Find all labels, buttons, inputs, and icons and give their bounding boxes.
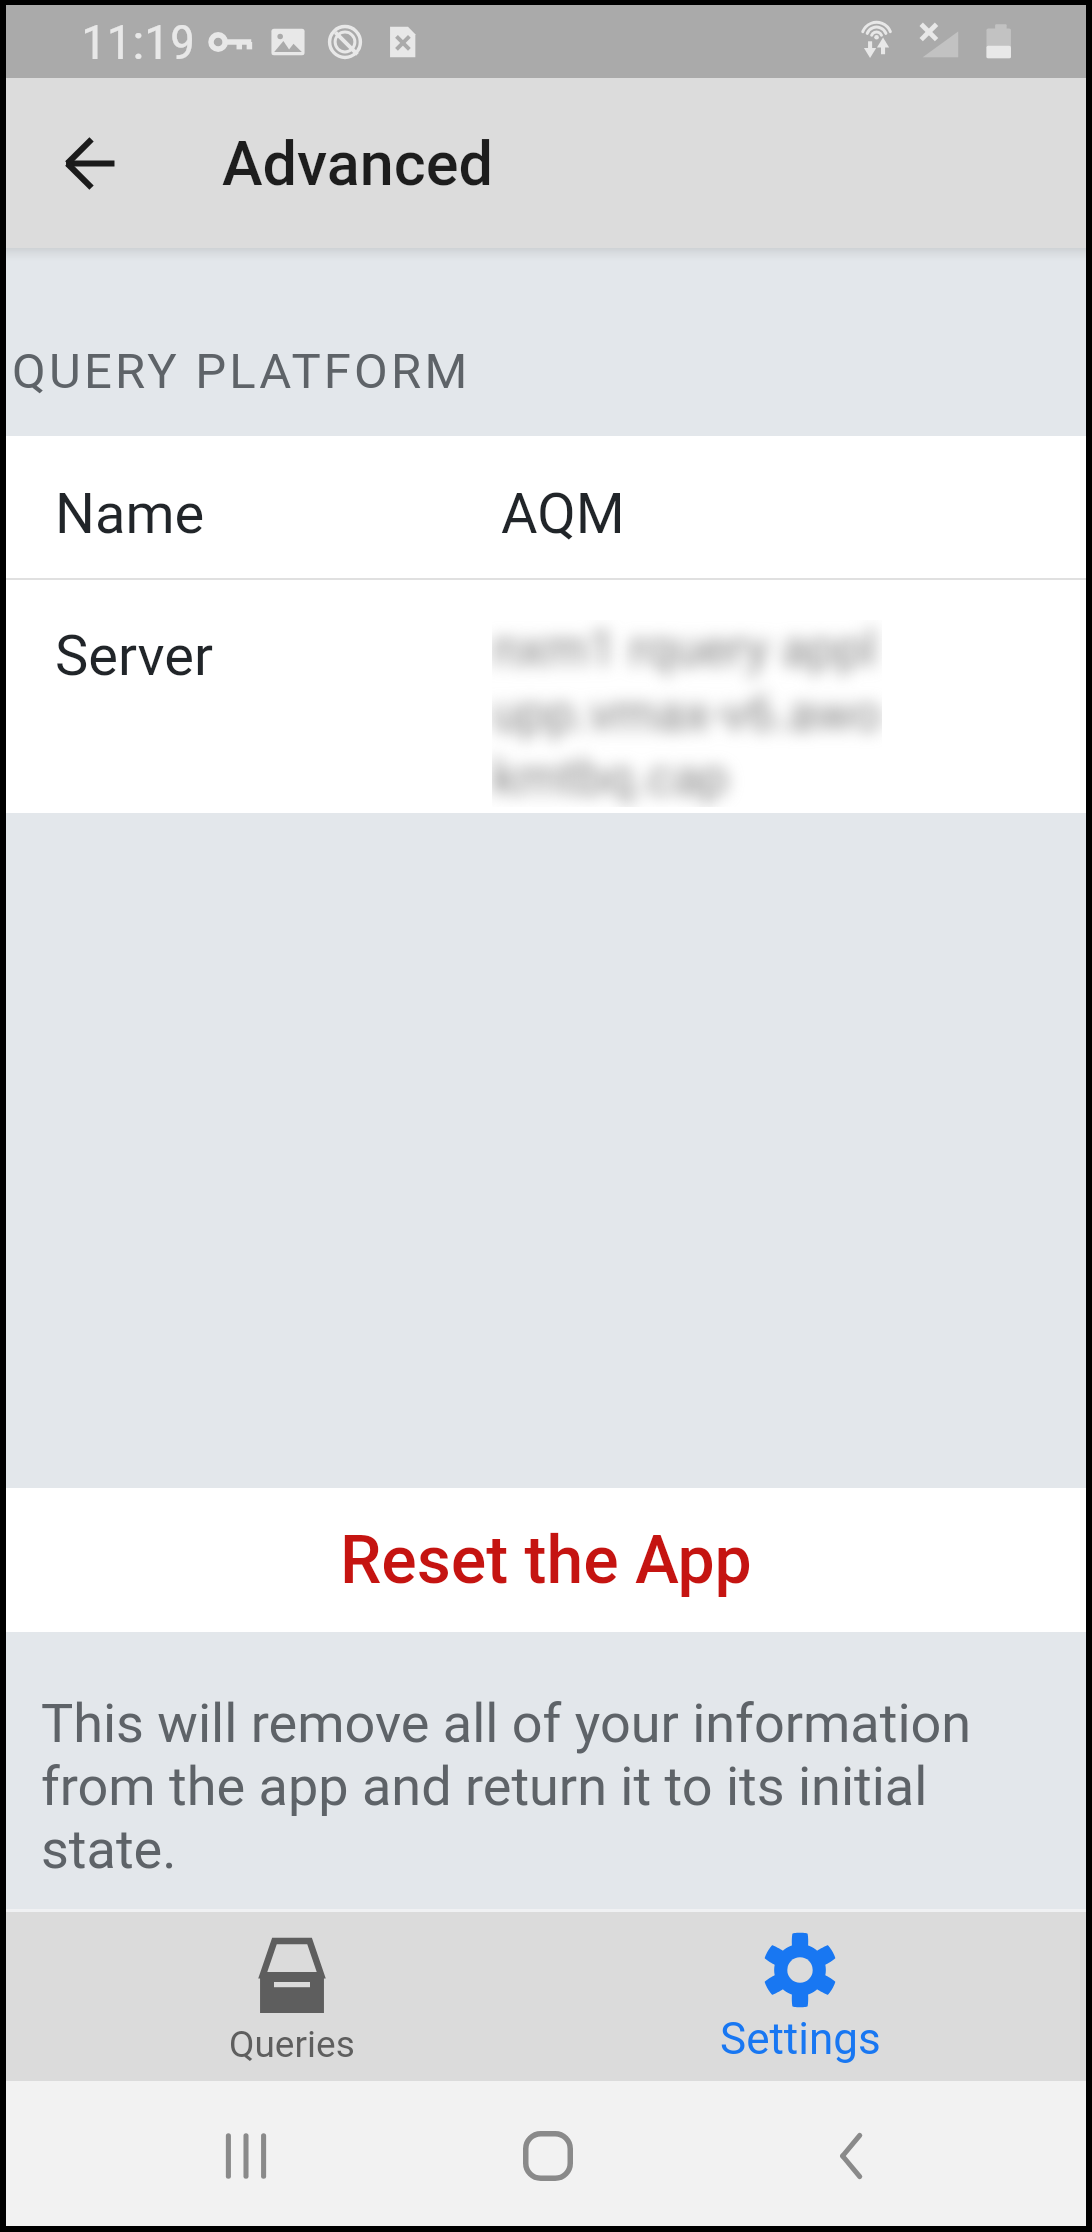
staticText: Server	[55, 623, 213, 689]
button[interactable]: Server	[6, 580, 1086, 813]
staticText: AQM	[501, 481, 625, 547]
staticText: Queries	[229, 2023, 355, 2066]
button[interactable]: Home	[453, 2085, 643, 2226]
button[interactable]: Recent apps	[151, 2085, 341, 2226]
staticText: Reset the App	[340, 1522, 752, 1599]
button[interactable]: Back	[26, 100, 152, 226]
staticText: Advanced	[222, 128, 493, 199]
staticText: 11:19	[81, 13, 195, 70]
staticText: Name	[55, 481, 205, 547]
button[interactable]: Name	[6, 436, 1086, 578]
staticText: Settings	[720, 2013, 881, 2065]
staticText: QUERY PLATFORM	[12, 343, 471, 400]
staticText: This will remove all of your information…	[41, 1692, 1014, 1881]
button[interactable]: Back	[755, 2085, 945, 2226]
button[interactable]: Reset the App	[6, 1488, 1086, 1632]
staticText: nxm1 rquery appl upp.vmax-v6.awo kmtbq.c…	[492, 620, 882, 807]
button[interactable]: Queries	[38, 1912, 546, 2081]
button[interactable]: Settings	[546, 1912, 1054, 2081]
